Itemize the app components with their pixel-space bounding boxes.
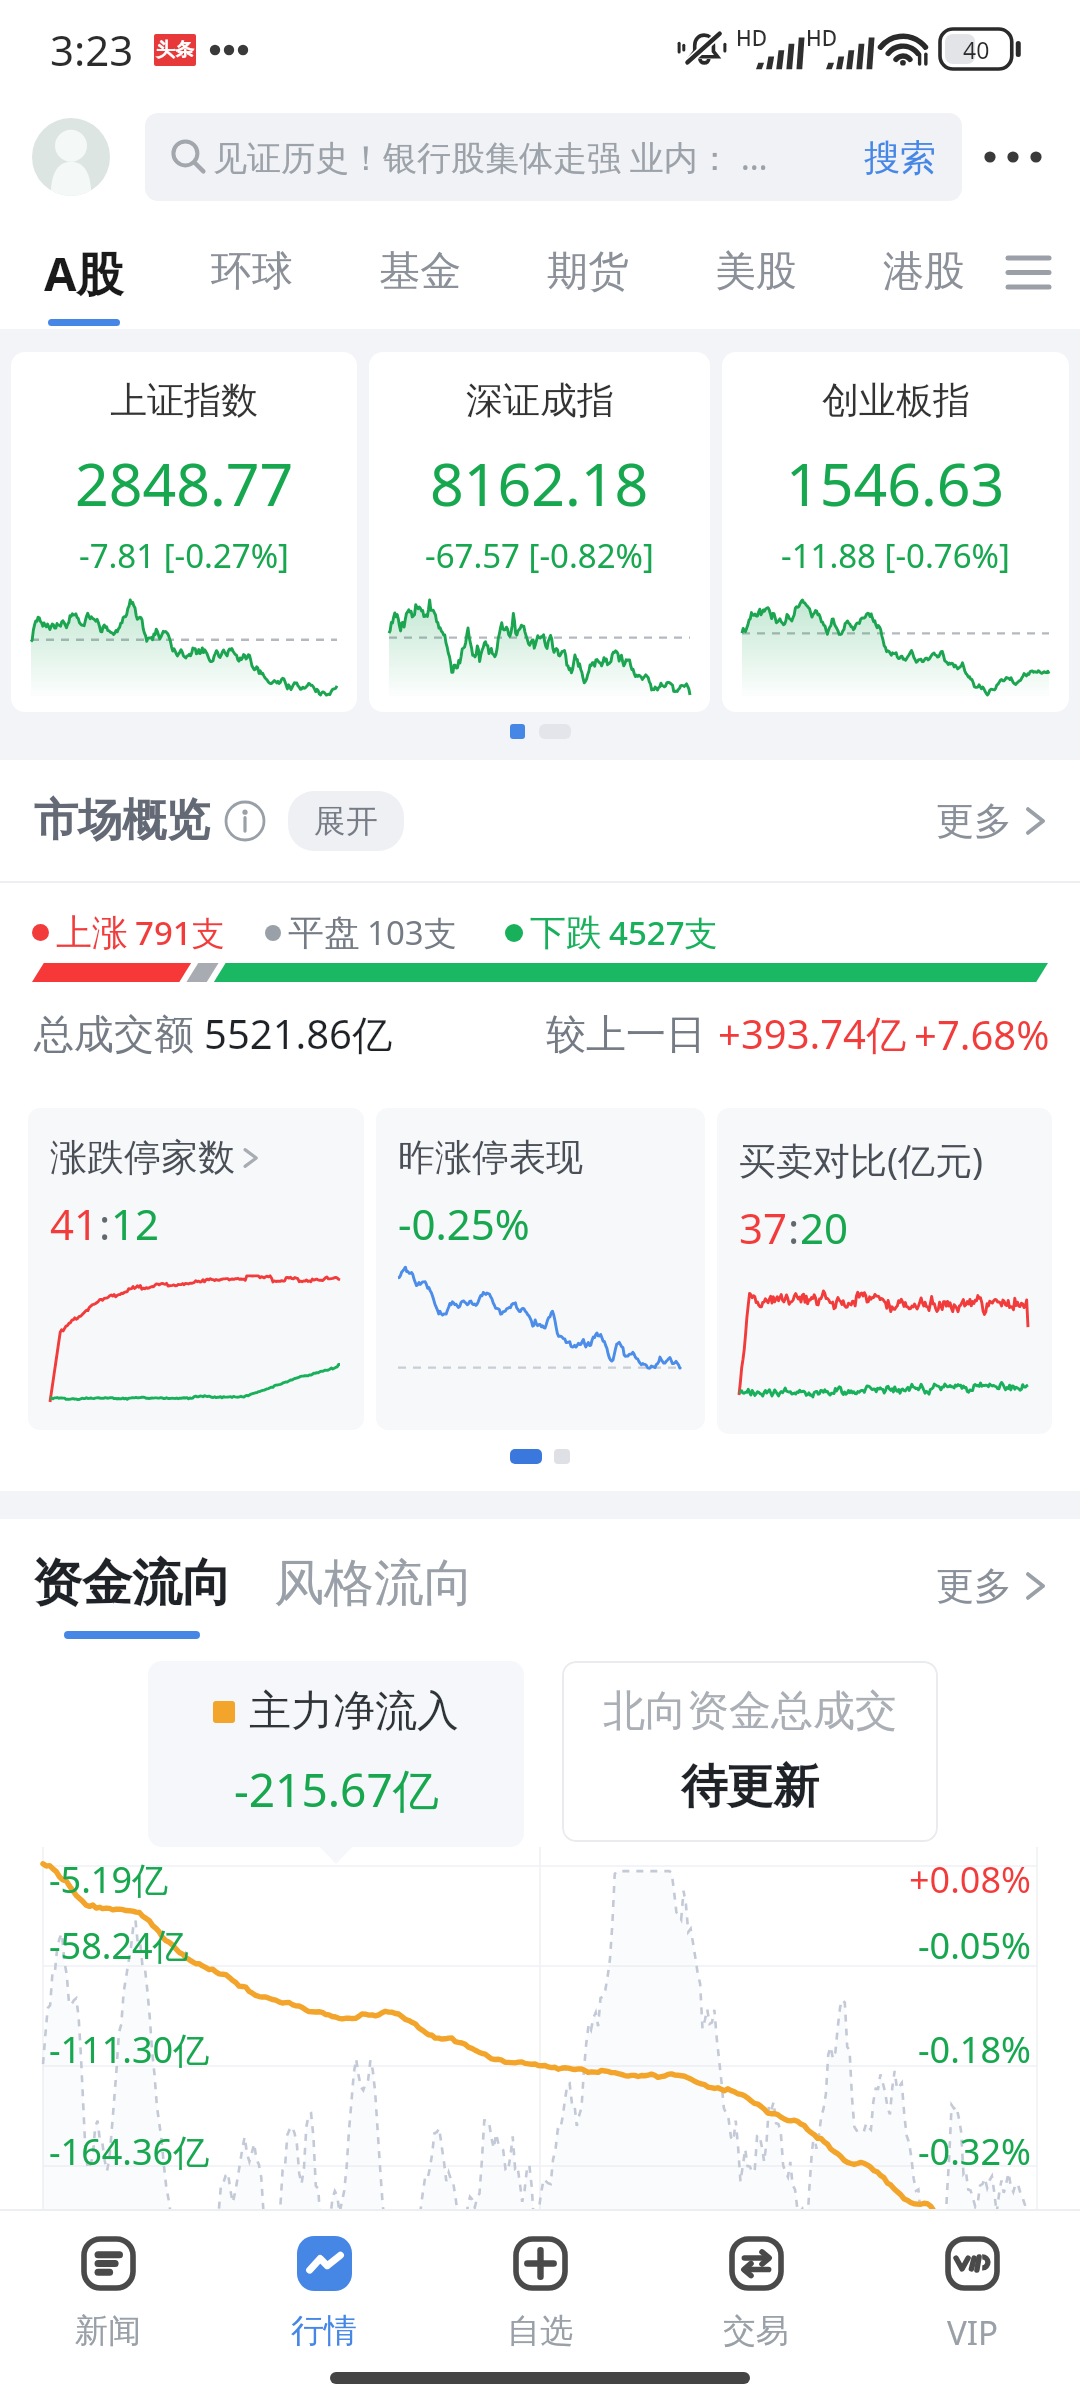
staticText: 791支 (135, 910, 225, 955)
button[interactable]: 创业板指 (722, 352, 1069, 712)
staticText: -111.30亿 (49, 2025, 210, 2074)
staticText: -164.36亿 (49, 2127, 210, 2176)
button[interactable]: 风格流向 (274, 1552, 474, 1615)
button[interactable]: 北向资金总成交 (562, 1661, 938, 1842)
staticText: 环球 (211, 246, 293, 298)
staticText: 主力净流入 (249, 1685, 459, 1738)
staticText: 自选 (507, 2310, 573, 2352)
staticText: 4527支 (609, 910, 718, 955)
staticText: 12 (111, 1195, 160, 1252)
button[interactable]: 更多 (936, 797, 1052, 845)
staticText: 港股 (883, 246, 965, 298)
staticText: 20 (800, 1199, 849, 1256)
staticText: 头条 (156, 38, 194, 62)
button[interactable]: 新闻 (0, 2211, 216, 2355)
staticText: 北向资金总成交 (603, 1685, 897, 1738)
staticText: 更多 (936, 797, 1012, 845)
button[interactable]: 见证历史！银行股集体走强 业内： … (145, 113, 962, 201)
staticText: 行情 (291, 2310, 357, 2352)
staticText: 期货 (547, 246, 629, 298)
staticText: 37 (739, 1199, 788, 1256)
staticText: 深证成指 (466, 377, 614, 424)
button[interactable]: 深证成指 (369, 352, 710, 712)
staticText: 市场概览 (34, 793, 210, 848)
button[interactable]: 涨跌停家数 (28, 1108, 364, 1430)
staticText: -215.67亿 (234, 1758, 439, 1821)
button[interactable]: 主力净流入 (148, 1661, 524, 1847)
button[interactable]: 交易 (648, 2211, 864, 2355)
staticText: -0.18% (918, 2025, 1031, 2074)
staticText: VIP (947, 2310, 998, 2355)
staticText: 搜索 (864, 135, 936, 180)
button[interactable]: 搜索 (864, 135, 936, 180)
button[interactable]: 资金流向 (32, 1552, 232, 1639)
staticText: : (788, 1199, 800, 1256)
staticText: 平盘 (288, 910, 360, 955)
button[interactable]: 更多 (936, 1552, 1052, 1610)
staticText: -58.24亿 (49, 1921, 189, 1970)
staticText: A股 (44, 241, 124, 305)
button[interactable]: 买卖对比(亿元) (717, 1108, 1052, 1434)
staticText: 3:23 (50, 21, 134, 78)
button[interactable]: 上证指数 (11, 352, 357, 712)
button[interactable]: 环球 (168, 216, 336, 329)
staticText: 8162.18 (430, 443, 649, 523)
staticText: -0.25% (398, 1195, 530, 1252)
button[interactable]: 期货 (504, 216, 672, 329)
staticText: +7.68% (914, 1007, 1050, 1061)
staticText: -5.19亿 (49, 1855, 169, 1904)
staticText: -11.88 [-0.76%] (781, 533, 1010, 578)
staticText: 涨跌停家数 (50, 1134, 235, 1181)
staticText: 1546.63 (786, 443, 1005, 523)
button[interactable]: VIP (864, 2211, 1080, 2355)
staticText: 总成交额 (34, 1009, 194, 1059)
staticText: 待更新 (681, 1758, 819, 1816)
button[interactable]: 展开 (288, 791, 404, 851)
button[interactable]: Profile (32, 118, 110, 196)
staticText: 风格流向 (274, 1552, 474, 1615)
staticText: 上涨 (56, 910, 128, 955)
staticText: 展开 (314, 801, 378, 841)
button[interactable]: 港股 (840, 216, 1008, 329)
button[interactable]: Menu (1008, 216, 1080, 329)
staticText: 见证历史！银行股集体走强 业内： … (213, 134, 854, 180)
staticText: -0.05% (918, 1921, 1031, 1970)
button[interactable]: 美股 (672, 216, 840, 329)
staticText: 昨涨停表现 (398, 1134, 583, 1181)
staticText: 买卖对比(亿元) (739, 1134, 984, 1185)
staticText: -0.32% (918, 2127, 1031, 2176)
staticText: 美股 (715, 246, 797, 298)
staticText: 下跌 (530, 910, 602, 955)
staticText: 5521.86亿 (204, 1006, 392, 1061)
staticText: -67.57 [-0.82%] (425, 533, 654, 578)
staticText: 较上一日 (546, 1009, 706, 1059)
staticText: 40 (963, 34, 990, 65)
button[interactable]: 自选 (432, 2211, 648, 2355)
staticText: HD (736, 24, 768, 53)
staticText: -7.81 [-0.27%] (79, 533, 289, 578)
staticText: +393.74亿 (718, 1006, 906, 1061)
staticText: 2848.77 (75, 443, 294, 523)
staticText: 更多 (936, 1562, 1012, 1610)
staticText: 创业板指 (822, 377, 970, 424)
staticText: 新闻 (75, 2310, 141, 2352)
button[interactable]: 行情 (216, 2211, 432, 2355)
staticText: 103支 (367, 910, 457, 955)
button[interactable]: 基金 (336, 216, 504, 329)
staticText: 上证指数 (110, 377, 258, 424)
staticText: 交易 (723, 2310, 789, 2352)
button[interactable]: 市场概览 (0, 760, 1080, 881)
staticText: 基金 (379, 246, 461, 298)
staticText: 41 (50, 1195, 99, 1252)
staticText: HD (806, 24, 838, 53)
staticText: +0.08% (909, 1855, 1031, 1904)
staticText: 资金流向 (32, 1552, 232, 1615)
button[interactable]: 昨涨停表现 (376, 1108, 705, 1430)
button[interactable]: A股 (0, 216, 168, 329)
button[interactable]: More options (984, 127, 1044, 187)
staticText: : (99, 1195, 111, 1252)
